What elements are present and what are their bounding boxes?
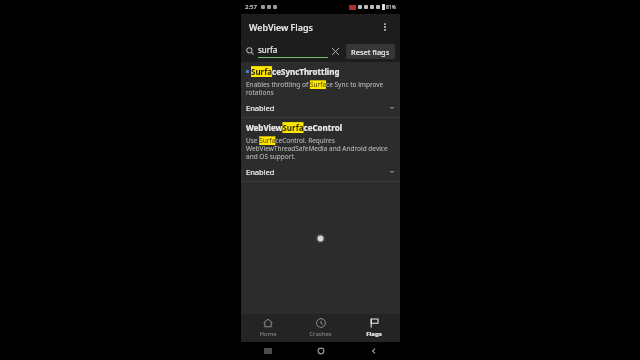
button[interactable]: surfa [246, 40, 342, 62]
staticText: surfa [258, 44, 278, 55]
button[interactable]: Back [347, 342, 400, 360]
staticText: Reset flags [351, 47, 390, 57]
staticText: WebView Flags [249, 21, 313, 33]
staticText: Crashes [309, 330, 332, 338]
button[interactable]: SurfaceSyncThrottling [241, 62, 400, 117]
button[interactable]: Recent apps [241, 342, 294, 360]
button[interactable]: WebViewSurfaceControl [241, 118, 400, 181]
button[interactable]: Enabled [246, 165, 395, 179]
staticText: Enabled [246, 103, 275, 113]
staticText: WebViewSurfaceControl [246, 122, 343, 133]
button[interactable]: More options [375, 17, 395, 37]
button[interactable]: Enabled [246, 101, 395, 115]
button[interactable]: Home [241, 314, 294, 342]
staticText: Use SurfaceControl. Requires WebViewThre… [246, 136, 395, 161]
button[interactable]: Clear search [328, 44, 342, 58]
staticText: SurfaceSyncThrottling [251, 66, 340, 77]
button[interactable]: Home [294, 342, 347, 360]
staticText: 2:57 [245, 3, 257, 11]
staticText: Enabled [246, 167, 275, 177]
button[interactable]: Crashes [294, 314, 347, 342]
button[interactable]: Flags [347, 314, 400, 342]
staticText: Flags [366, 330, 382, 338]
staticText: Enables throttling of Surface Sync to im… [246, 80, 395, 97]
button[interactable]: Reset flags [346, 44, 395, 59]
staticText: 81% [386, 4, 396, 11]
staticText: Home [259, 330, 277, 338]
